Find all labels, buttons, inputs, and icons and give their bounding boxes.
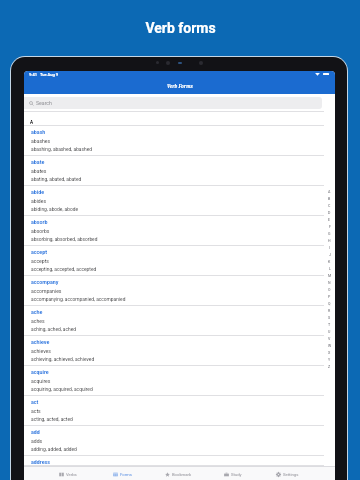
staticText: acquire (31, 369, 49, 375)
staticText: V (328, 337, 331, 341)
staticText: N (328, 281, 331, 285)
staticText: B (328, 197, 331, 201)
staticText: 9:41 Tue Aug 9 (29, 72, 59, 77)
button[interactable]: Verbs (40, 467, 95, 480)
staticText: address (31, 459, 50, 465)
staticText: abashing, abashed, abashed (31, 147, 92, 153)
staticText: S (328, 316, 331, 320)
button[interactable]: Forms (95, 467, 150, 480)
staticText: achieve (31, 339, 50, 345)
staticText: accepting, accepted, accepted (31, 267, 97, 273)
staticText: Study (231, 472, 242, 477)
staticText: absorb (31, 219, 48, 225)
staticText: H (328, 239, 331, 243)
button[interactable]: Settings (260, 467, 315, 480)
staticText: aches (31, 318, 45, 324)
staticText: abash (31, 129, 46, 135)
staticText: abide (31, 189, 45, 195)
staticText: Bookmark (172, 472, 191, 477)
button[interactable]: Bookmark (150, 467, 205, 480)
staticText: O (328, 288, 331, 292)
staticText: R (328, 309, 331, 313)
staticText: I (329, 246, 331, 250)
staticText: Z (328, 365, 331, 369)
staticText: Verbs (66, 472, 77, 477)
staticText: ache (31, 309, 43, 315)
staticText: aching, ached, ached (31, 327, 76, 333)
button[interactable]: achieve (24, 336, 335, 366)
staticText: add (31, 429, 40, 435)
staticText: accompany (31, 279, 59, 285)
button[interactable]: Study (205, 467, 260, 480)
staticText: abides (31, 198, 47, 204)
staticText: abiding, abode, abode (31, 207, 78, 213)
button[interactable]: accept (24, 246, 335, 276)
button[interactable]: act (24, 396, 335, 426)
staticText: acquiring, acquired, acquired (31, 387, 93, 393)
staticText: adds (31, 438, 43, 444)
staticText: Verb Forms (167, 83, 193, 89)
staticText: act (31, 399, 39, 405)
staticText: W (328, 344, 332, 348)
button[interactable]: absorb (24, 216, 335, 246)
staticText: absorbs (31, 228, 50, 234)
staticText: P (328, 295, 331, 299)
staticText: A (328, 190, 331, 194)
staticText: achieves (31, 348, 51, 354)
staticText: G (328, 232, 331, 236)
button[interactable]: abide (24, 186, 335, 216)
staticText: accompanying, accompanied, accompanied (31, 297, 126, 303)
staticText: acquires (31, 378, 51, 384)
staticText: Forms (120, 472, 132, 477)
button[interactable]: abate (24, 156, 335, 186)
staticText: M (328, 274, 332, 278)
staticText: U (328, 330, 331, 334)
button[interactable]: accompany (24, 276, 335, 306)
staticText: acts (31, 408, 41, 414)
staticText: E (328, 218, 331, 222)
staticText: Verb forms (145, 20, 216, 36)
staticText: D (328, 211, 331, 215)
staticText: L (329, 267, 331, 271)
staticText: abashes (31, 138, 51, 144)
staticText: Settings (283, 472, 299, 477)
staticText: adding, added, added (31, 447, 77, 453)
staticText: acting, acted, acted (31, 417, 73, 423)
button[interactable]: address (24, 456, 335, 466)
staticText: J (329, 253, 331, 257)
staticText: abating, abated, abated (31, 177, 82, 183)
button[interactable]: ache (24, 306, 335, 336)
staticText: accept (31, 249, 47, 255)
staticText: X (328, 351, 331, 355)
button[interactable]: abash (24, 126, 335, 156)
staticText: absorbing, absorbed, absorbed (31, 237, 98, 243)
button[interactable]: acquire (24, 366, 335, 396)
button[interactable]: add (24, 426, 335, 456)
staticText: Search (36, 100, 52, 106)
staticText: abates (31, 168, 47, 174)
staticText: A (30, 120, 34, 125)
staticText: accepts (31, 258, 49, 264)
staticText: T (328, 323, 331, 327)
staticText: Y (328, 358, 331, 362)
staticText: achieving, achieved, achieved (31, 357, 95, 363)
staticText: Q (328, 302, 331, 306)
staticText: C (328, 204, 331, 208)
staticText: accompanies (31, 288, 62, 294)
staticText: K (328, 260, 331, 264)
staticText: F (329, 225, 331, 229)
button[interactable]: Search (24, 97, 322, 109)
staticText: abate (31, 159, 45, 165)
